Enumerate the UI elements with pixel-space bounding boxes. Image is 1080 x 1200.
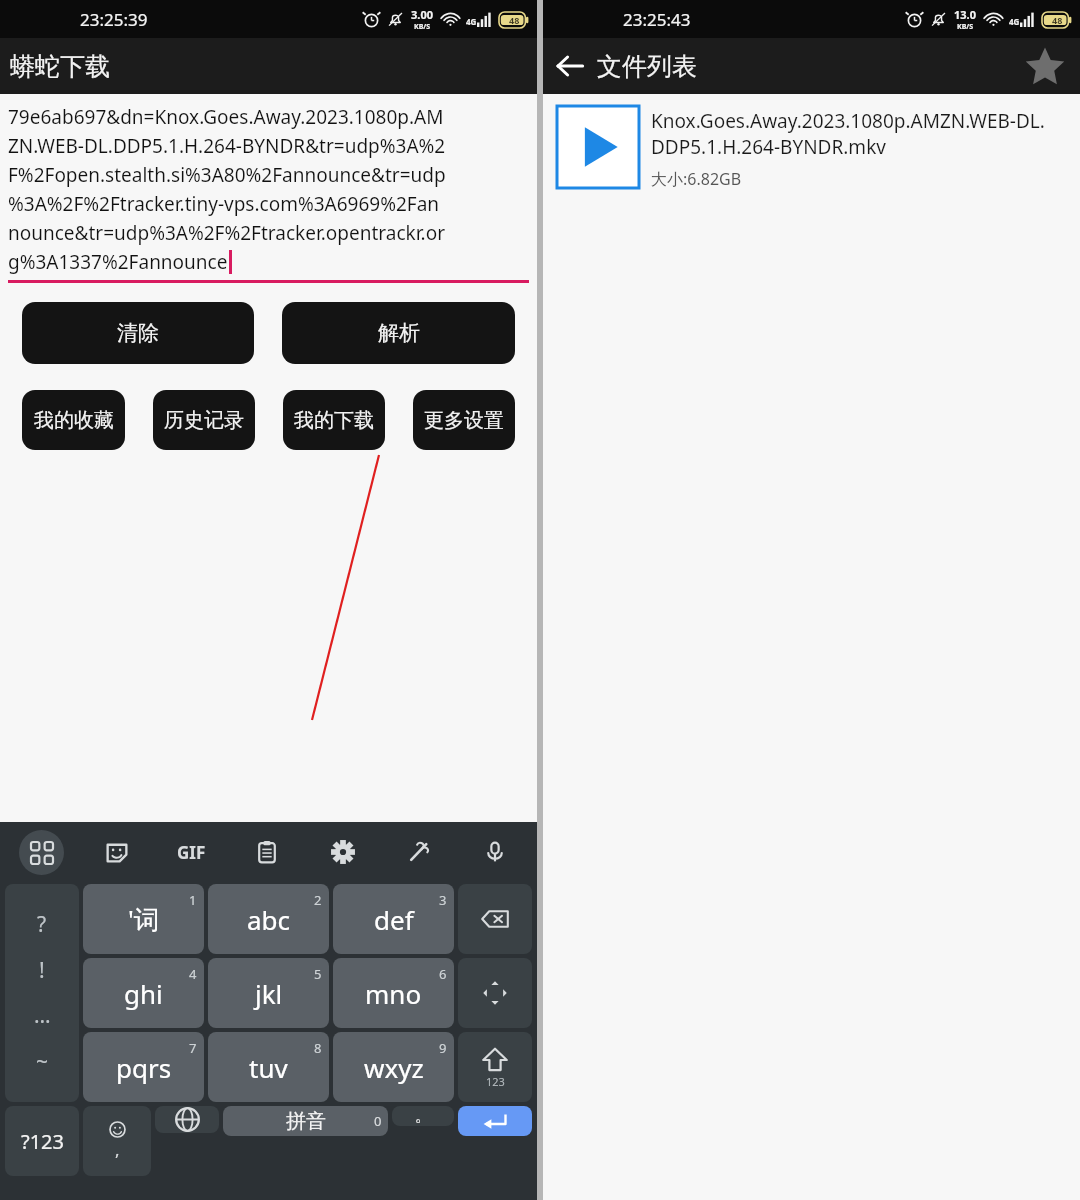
staticText: 3.00 bbox=[411, 7, 433, 22]
button[interactable]: Knox.Goes.Away.2023.1080p.AMZN.WEB-DL. bbox=[557, 106, 1070, 190]
button[interactable]: GIF bbox=[154, 841, 229, 864]
staticText: 大小:6.82GB bbox=[651, 168, 742, 190]
staticText: DDP5.1.H.264-BYNDR.mkv bbox=[651, 134, 886, 160]
staticText: 解析 bbox=[378, 320, 420, 346]
button[interactable]: backspace bbox=[458, 884, 532, 954]
staticText: 3 bbox=[439, 891, 447, 909]
staticText: 2 bbox=[314, 891, 322, 909]
button[interactable]: 我的收藏 bbox=[22, 390, 125, 450]
button[interactable]: 解析 bbox=[282, 302, 515, 364]
staticText: %3A%2F%2Ftracker.tiny-vps.com%3A6969%2Fa… bbox=[8, 191, 440, 217]
staticText: GIF bbox=[177, 841, 206, 864]
staticText: abc bbox=[247, 902, 291, 937]
staticText: KB/S bbox=[957, 22, 974, 32]
button[interactable]: 0 bbox=[223, 1106, 388, 1136]
staticText: 8 bbox=[314, 1039, 322, 1057]
staticText: ZN.WEB-DL.DDP5.1.H.264-BYNDR&tr=udp%3A%2 bbox=[8, 133, 446, 159]
button[interactable]: Language bbox=[155, 1106, 219, 1133]
staticText: 历史记录 bbox=[164, 408, 244, 433]
staticText: 更多设置 bbox=[424, 408, 504, 433]
staticText: 79e6ab697&dn=Knox.Goes.Away.2023.1080p.A… bbox=[8, 104, 444, 130]
staticText: 。 bbox=[415, 1106, 431, 1126]
button[interactable]: Clipboard bbox=[229, 822, 305, 882]
staticText: 4G bbox=[1009, 16, 1020, 27]
staticText: 48 bbox=[509, 14, 520, 26]
staticText: 6 bbox=[439, 965, 447, 983]
button[interactable]: 5 bbox=[208, 958, 329, 1028]
button[interactable]: Apps bbox=[19, 830, 64, 875]
button[interactable]: 历史记录 bbox=[153, 390, 255, 450]
button[interactable]: 9 bbox=[333, 1032, 454, 1102]
staticText: def bbox=[374, 902, 414, 937]
button[interactable]: 8 bbox=[208, 1032, 329, 1102]
button[interactable]: shift bbox=[458, 1032, 532, 1102]
staticText: pqrs bbox=[116, 1050, 172, 1085]
staticText: 7 bbox=[189, 1039, 197, 1057]
staticText: nounce&tr=udp%3A%2F%2Ftracker.opentrackr… bbox=[8, 220, 445, 246]
staticText: wxyz bbox=[364, 1050, 424, 1085]
button[interactable]: ?123 bbox=[5, 1106, 79, 1176]
staticText: KB/S bbox=[414, 22, 431, 32]
staticText: ? bbox=[37, 910, 47, 939]
staticText: 我的下载 bbox=[294, 408, 374, 433]
staticText: 文件列表 bbox=[597, 51, 697, 82]
staticText: ghi bbox=[124, 976, 163, 1011]
button[interactable]: Handwriting bbox=[381, 822, 457, 882]
staticText: … bbox=[34, 1001, 51, 1030]
staticText: ! bbox=[39, 956, 45, 985]
staticText: Knox.Goes.Away.2023.1080p.AMZN.WEB-DL. bbox=[651, 108, 1045, 134]
staticText: 48 bbox=[1052, 14, 1063, 26]
button[interactable]: Favorite bbox=[1022, 43, 1068, 89]
staticText: mno bbox=[365, 976, 422, 1011]
button[interactable]: 清除 bbox=[22, 302, 254, 364]
button[interactable]: ? bbox=[5, 884, 79, 1102]
button[interactable]: Enter bbox=[458, 1106, 532, 1136]
button[interactable]: 7 bbox=[83, 1032, 204, 1102]
staticText: 4G bbox=[466, 16, 477, 27]
staticText: 4 bbox=[189, 965, 197, 983]
button[interactable]: 更多设置 bbox=[413, 390, 515, 450]
staticText: 清除 bbox=[117, 320, 159, 346]
button[interactable]: Sticker bbox=[79, 822, 154, 882]
staticText: 9 bbox=[439, 1039, 447, 1057]
button[interactable]: 2 bbox=[208, 884, 329, 954]
staticText: 我的收藏 bbox=[34, 408, 114, 433]
staticText: jkl bbox=[255, 976, 283, 1011]
staticText: 23:25:43 bbox=[623, 8, 691, 31]
button[interactable]: Back bbox=[543, 39, 597, 93]
button[interactable]: arrows bbox=[458, 958, 532, 1028]
staticText: 13.0 bbox=[954, 7, 976, 22]
button[interactable]: , bbox=[83, 1106, 151, 1176]
staticText: 123 bbox=[486, 1074, 505, 1089]
button[interactable]: 4 bbox=[83, 958, 204, 1028]
staticText: 5 bbox=[314, 965, 322, 983]
button[interactable]: Voice input bbox=[457, 822, 533, 882]
staticText: ?123 bbox=[21, 1128, 64, 1155]
staticText: ~ bbox=[36, 1047, 49, 1076]
staticText: '词 bbox=[128, 901, 160, 937]
staticText: , bbox=[115, 1138, 120, 1161]
button[interactable]: Settings bbox=[305, 822, 381, 882]
staticText: 拼音 bbox=[286, 1109, 326, 1134]
staticText: 1 bbox=[189, 891, 197, 909]
staticText: g%3A1337%2Fannounce bbox=[8, 249, 228, 275]
button[interactable]: 。 bbox=[392, 1106, 454, 1126]
button[interactable]: 6 bbox=[333, 958, 454, 1028]
staticText: tuv bbox=[249, 1050, 288, 1085]
staticText: F%2Fopen.stealth.si%3A80%2Fannounce&tr=u… bbox=[8, 162, 446, 188]
button[interactable]: 1 bbox=[83, 884, 204, 954]
staticText: 23:25:39 bbox=[80, 8, 148, 31]
button[interactable]: 3 bbox=[333, 884, 454, 954]
staticText: 蟒蛇下载 bbox=[10, 51, 110, 82]
button[interactable]: 我的下载 bbox=[283, 390, 385, 450]
staticText: 0 bbox=[374, 1112, 382, 1130]
